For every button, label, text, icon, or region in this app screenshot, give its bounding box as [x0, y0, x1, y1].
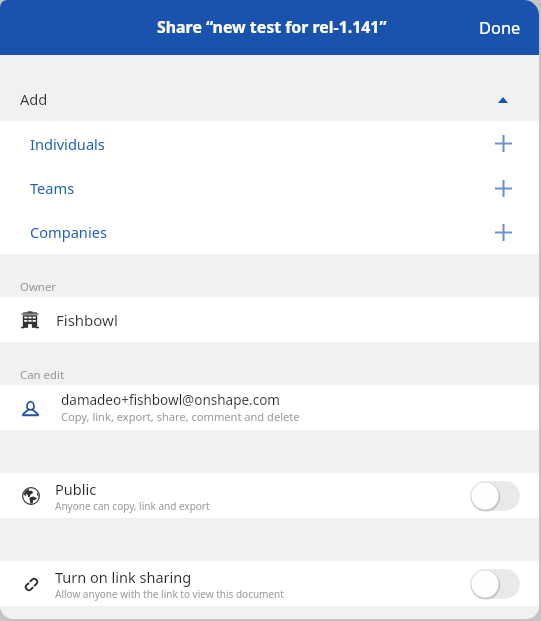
staticText: Turn on link sharing [55, 567, 192, 587]
staticText: Public [55, 479, 97, 499]
staticText: Add [20, 89, 48, 109]
button[interactable]: Done [461, 5, 539, 51]
staticText: Companies [30, 222, 107, 242]
staticText: Allow anyone with the link to view this … [55, 587, 284, 601]
staticText: Teams [30, 178, 75, 198]
button[interactable]: damadeo+fishbowl@onshape.com [0, 385, 539, 430]
button[interactable]: Add [0, 55, 539, 121]
staticText: Individuals [30, 134, 105, 154]
button[interactable]: Teams [0, 166, 539, 210]
staticText: Owner [20, 279, 57, 295]
staticText: Done [479, 16, 521, 38]
staticText: Share “new test for rel-1.141” [157, 16, 387, 38]
staticText: Copy, link, export, share, comment and d… [61, 409, 300, 424]
staticText: damadeo+fishbowl@onshape.com [61, 391, 280, 409]
staticText: Can edit [20, 367, 65, 383]
button[interactable]: Turn on link sharing [0, 561, 539, 606]
button[interactable]: Toggle Turn on link sharing [470, 569, 520, 599]
button[interactable]: Companies [0, 210, 539, 254]
button[interactable]: Public [0, 473, 539, 518]
staticText: Anyone can copy, link and export [55, 499, 210, 513]
button[interactable]: Toggle Public [470, 481, 520, 511]
button[interactable]: Fishbowl [0, 297, 539, 342]
staticText: Fishbowl [56, 310, 118, 330]
button[interactable]: Individuals [0, 121, 539, 166]
